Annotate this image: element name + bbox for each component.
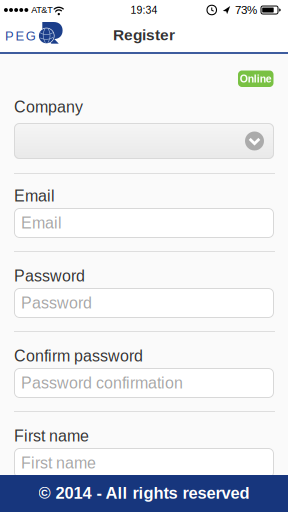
staticText: First name [14, 427, 89, 445]
staticText: Email [21, 214, 62, 232]
button[interactable]: First name text field [14, 448, 274, 478]
staticText: Password [21, 294, 92, 312]
staticText: P [5, 29, 14, 43]
staticText: G [26, 29, 36, 43]
staticText: 73% [235, 4, 257, 16]
button[interactable]: Password confirmation text field [14, 368, 274, 398]
staticText: 19:34 [130, 4, 157, 16]
staticText: First name [21, 454, 96, 472]
staticText: Register [113, 26, 175, 44]
staticText: AT&T [31, 5, 52, 15]
staticText: Online [240, 73, 272, 85]
staticText: © 2014 - All rights reserved [38, 484, 249, 502]
staticText: Password [14, 267, 85, 285]
button[interactable]: Company selector [14, 123, 274, 159]
staticText: Company [14, 98, 83, 116]
button[interactable]: Online status [238, 70, 273, 87]
staticText: Email [14, 187, 55, 205]
staticText: Password confirmation [21, 374, 183, 392]
button[interactable]: PEG home [0, 25, 63, 47]
staticText: E [15, 29, 24, 43]
button[interactable]: Password text field [14, 288, 274, 318]
button[interactable]: Email text field [14, 208, 274, 238]
staticText: Confirm password [14, 347, 143, 365]
